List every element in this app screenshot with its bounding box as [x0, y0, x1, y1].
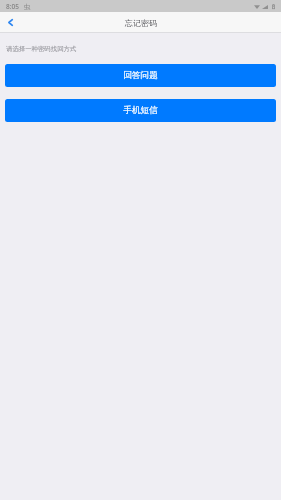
button[interactable]: 手机短信 — [5, 99, 276, 122]
staticText: 忘记密码 — [125, 18, 157, 28]
staticText: 手机短信 — [123, 105, 158, 116]
button[interactable]: Back — [0, 12, 21, 32]
staticText: 虫 — [24, 3, 31, 11]
staticText: 8:05 — [6, 2, 19, 11]
staticText: 回答问题 — [123, 70, 158, 81]
staticText: 请选择一种密码找回方式 — [6, 45, 77, 53]
button[interactable]: 回答问题 — [5, 64, 276, 87]
